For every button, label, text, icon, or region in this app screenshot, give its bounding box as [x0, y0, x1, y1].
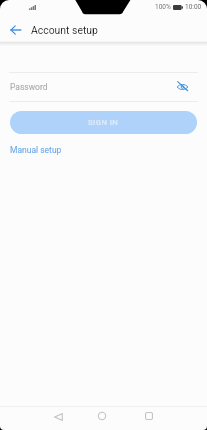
staticText: 10:00 [185, 3, 202, 11]
staticText: Account setup [31, 24, 98, 36]
button[interactable]: Recents [137, 404, 161, 428]
button[interactable]: Password [0, 73, 207, 101]
staticText: SIGN IN [88, 118, 119, 127]
button[interactable]: SIGN IN [10, 111, 197, 134]
button[interactable]: Home [90, 404, 114, 428]
button[interactable]: Back [2, 16, 29, 43]
staticText: Manual setup [10, 145, 62, 155]
staticText: Password [10, 82, 48, 92]
button[interactable]: Manual setup [10, 145, 62, 155]
button[interactable]: Show password [172, 76, 192, 96]
button[interactable]: Back [46, 405, 70, 429]
staticText: 100% [155, 3, 171, 11]
